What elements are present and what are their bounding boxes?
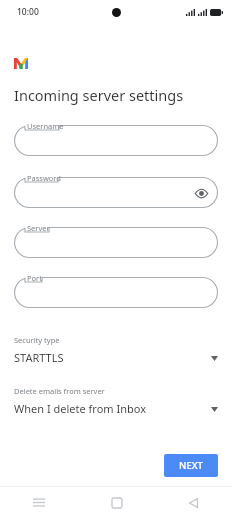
button[interactable]: Delete emails from server bbox=[14, 386, 218, 416]
staticText: NEXT bbox=[179, 459, 203, 472]
staticText: 10:00 bbox=[17, 6, 39, 18]
button[interactable]: Server bbox=[14, 227, 218, 258]
staticText: STARTTLS bbox=[14, 350, 64, 365]
button[interactable]: Back bbox=[155, 487, 232, 518]
button[interactable]: Security type bbox=[14, 335, 218, 365]
staticText: Incoming server settings bbox=[14, 85, 184, 105]
staticText: When I delete from Inbox bbox=[14, 401, 146, 416]
staticText: Username bbox=[27, 121, 64, 131]
button[interactable]: Username bbox=[14, 125, 218, 156]
button[interactable]: Show password bbox=[192, 184, 210, 202]
button[interactable]: Port bbox=[14, 277, 218, 308]
button[interactable]: Recent apps bbox=[0, 487, 78, 518]
staticText: Password bbox=[27, 173, 61, 183]
staticText: Delete emails from server bbox=[14, 386, 105, 396]
staticText: Port bbox=[27, 273, 42, 283]
staticText: Security type bbox=[14, 335, 60, 345]
staticText: Server bbox=[27, 223, 50, 233]
button[interactable]: Home bbox=[78, 487, 155, 518]
button[interactable]: NEXT bbox=[164, 454, 218, 477]
button[interactable]: Password bbox=[14, 177, 218, 208]
